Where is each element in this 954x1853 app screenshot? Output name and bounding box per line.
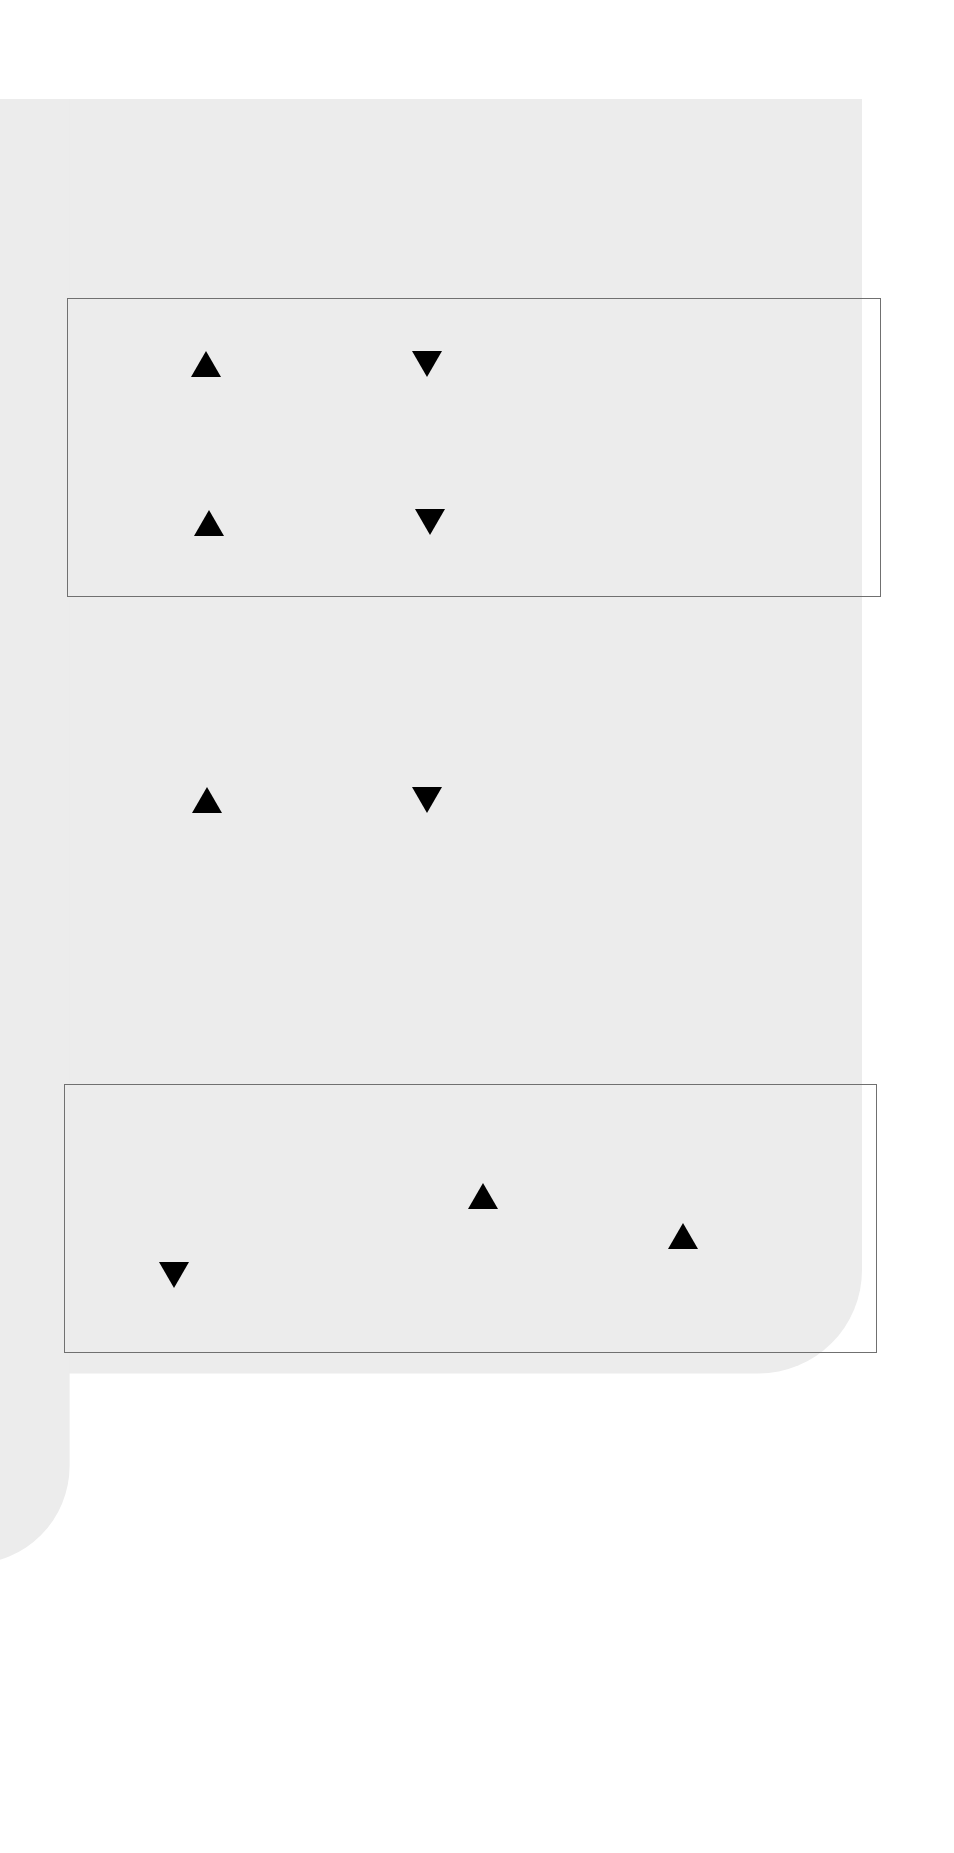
button[interactable] xyxy=(64,1084,877,1353)
button[interactable]: Increase xyxy=(468,1183,498,1209)
button[interactable]: Decrease xyxy=(412,351,442,377)
button[interactable]: Decrease xyxy=(415,509,445,535)
button[interactable]: Decrease xyxy=(412,787,442,813)
button[interactable]: Increase xyxy=(194,510,224,536)
button[interactable]: Increase xyxy=(192,787,222,813)
button[interactable]: Decrease xyxy=(159,1262,189,1288)
button[interactable]: Increase xyxy=(191,351,221,377)
button[interactable] xyxy=(67,298,881,597)
button[interactable]: Increase xyxy=(668,1223,698,1249)
